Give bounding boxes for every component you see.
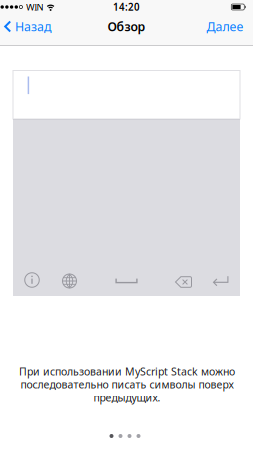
button[interactable] xyxy=(21,269,43,291)
staticText: предыдущих. xyxy=(93,390,160,404)
button[interactable] xyxy=(173,275,193,289)
staticText: Назад xyxy=(15,18,52,35)
button[interactable]: Назад xyxy=(4,11,52,42)
button[interactable] xyxy=(109,431,140,441)
button[interactable]: Далее xyxy=(206,11,243,42)
button[interactable] xyxy=(58,270,80,292)
staticText: При использовании MyScript Stack можно xyxy=(19,364,235,378)
staticText: 14:20 xyxy=(113,0,140,13)
staticText: последовательно писать символы поверх xyxy=(20,377,233,391)
staticText: WIN xyxy=(26,1,44,13)
button[interactable] xyxy=(210,274,230,288)
button[interactable] xyxy=(113,273,139,287)
staticText: Обзор xyxy=(107,18,145,35)
staticText: Далее xyxy=(206,18,243,35)
